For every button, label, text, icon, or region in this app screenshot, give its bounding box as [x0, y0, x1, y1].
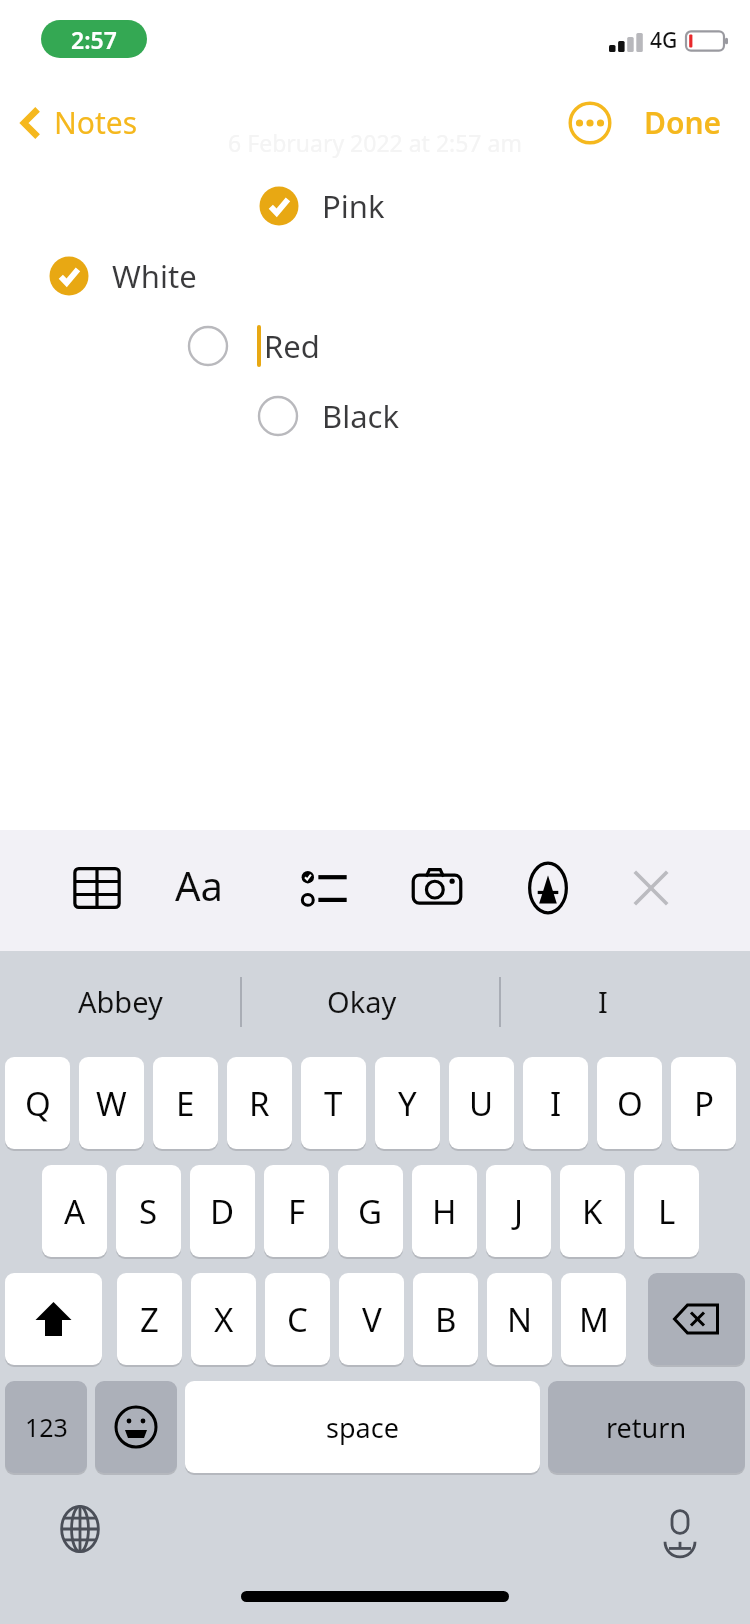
button[interactable]: S — [116, 1165, 181, 1257]
button[interactable]: M — [561, 1273, 626, 1365]
button[interactable]: Table — [61, 852, 133, 924]
button[interactable]: Okay — [252, 951, 472, 1051]
button[interactable]: G — [338, 1165, 403, 1257]
button[interactable]: Abbey — [10, 951, 230, 1051]
button[interactable]: U — [449, 1057, 514, 1149]
staticText: A — [64, 1189, 86, 1234]
button[interactable]: 123 — [5, 1381, 87, 1473]
staticText: D — [210, 1189, 235, 1234]
button[interactable]: B — [413, 1273, 478, 1365]
button[interactable]: Y — [375, 1057, 440, 1149]
button[interactable]: R — [227, 1057, 292, 1149]
button[interactable]: O — [597, 1057, 662, 1149]
button[interactable]: Z — [117, 1273, 182, 1365]
staticText: return — [606, 1409, 687, 1446]
staticText: O — [617, 1081, 643, 1126]
staticText: E — [176, 1081, 195, 1126]
staticText: Notes — [54, 102, 138, 143]
button[interactable]: V — [339, 1273, 404, 1365]
button[interactable]: Markup — [512, 852, 584, 924]
button[interactable]: Pink — [258, 185, 385, 227]
button[interactable]: J — [486, 1165, 551, 1257]
button[interactable]: F — [264, 1165, 329, 1257]
staticText: 123 — [25, 1410, 68, 1444]
button[interactable]: H — [412, 1165, 477, 1257]
staticText: L — [658, 1189, 676, 1234]
button[interactable]: Black — [257, 395, 399, 437]
button[interactable]: E — [153, 1057, 218, 1149]
staticText: X — [214, 1297, 234, 1342]
button[interactable]: K — [560, 1165, 625, 1257]
button[interactable]: W — [79, 1057, 144, 1149]
staticText: Done — [644, 102, 722, 143]
button[interactable]: A — [42, 1165, 107, 1257]
button[interactable]: Q — [5, 1057, 70, 1149]
staticText: B — [435, 1297, 457, 1342]
button[interactable]: Aa — [175, 858, 223, 912]
staticText: 2:57 — [71, 24, 117, 55]
staticText: R — [249, 1081, 270, 1126]
button[interactable]: Done — [638, 94, 728, 151]
staticText: K — [582, 1189, 603, 1234]
button[interactable]: Red — [187, 325, 320, 367]
staticText: Red — [264, 325, 320, 367]
staticText: F — [288, 1189, 306, 1234]
button[interactable]: Close — [615, 852, 687, 924]
button[interactable]: Dictate — [648, 1497, 712, 1561]
staticText: Black — [322, 395, 399, 437]
button[interactable]: Camera — [401, 852, 473, 924]
button[interactable]: Checklist — [288, 852, 360, 924]
staticText: Y — [398, 1081, 417, 1126]
button[interactable]: Text format — [175, 852, 247, 924]
button[interactable]: I — [523, 1057, 588, 1149]
button[interactable]: Delete — [648, 1273, 745, 1365]
button[interactable]: Change keyboard — [48, 1497, 112, 1561]
staticText: G — [358, 1189, 383, 1234]
button[interactable]: N — [487, 1273, 552, 1365]
staticText: Pink — [322, 185, 385, 227]
staticText: Okay — [327, 982, 397, 1021]
staticText: I — [550, 1081, 562, 1126]
staticText: space — [326, 1409, 399, 1446]
staticText: H — [432, 1189, 457, 1234]
button[interactable]: More options — [564, 97, 616, 149]
staticText: S — [139, 1189, 158, 1234]
button[interactable]: C — [265, 1273, 330, 1365]
staticText: P — [694, 1081, 714, 1126]
button[interactable]: T — [301, 1057, 366, 1149]
staticText: 4G — [650, 26, 678, 55]
staticText: I — [598, 982, 608, 1021]
staticText: Z — [140, 1297, 159, 1342]
button[interactable]: space — [185, 1381, 540, 1473]
button[interactable]: D — [190, 1165, 255, 1257]
staticText: J — [514, 1189, 524, 1234]
staticText: C — [287, 1297, 308, 1342]
staticText: U — [469, 1081, 494, 1126]
staticText: W — [96, 1081, 127, 1126]
button[interactable]: return — [548, 1381, 745, 1473]
staticText: V — [362, 1297, 382, 1342]
button[interactable]: Notes — [14, 96, 144, 149]
staticText: Abbey — [78, 982, 163, 1021]
staticText: Q — [25, 1081, 51, 1126]
staticText: M — [579, 1297, 609, 1342]
button[interactable]: Shift — [5, 1273, 102, 1365]
button[interactable]: I — [493, 951, 713, 1051]
staticText: N — [507, 1297, 533, 1342]
button[interactable]: X — [191, 1273, 256, 1365]
staticText: 6 February 2022 at 2:57 am — [228, 127, 522, 158]
button[interactable]: L — [634, 1165, 699, 1257]
button[interactable]: Emoji — [95, 1381, 177, 1473]
staticText: White — [112, 255, 197, 297]
button[interactable]: White — [48, 255, 197, 297]
staticText: T — [324, 1081, 343, 1126]
button[interactable]: P — [671, 1057, 736, 1149]
